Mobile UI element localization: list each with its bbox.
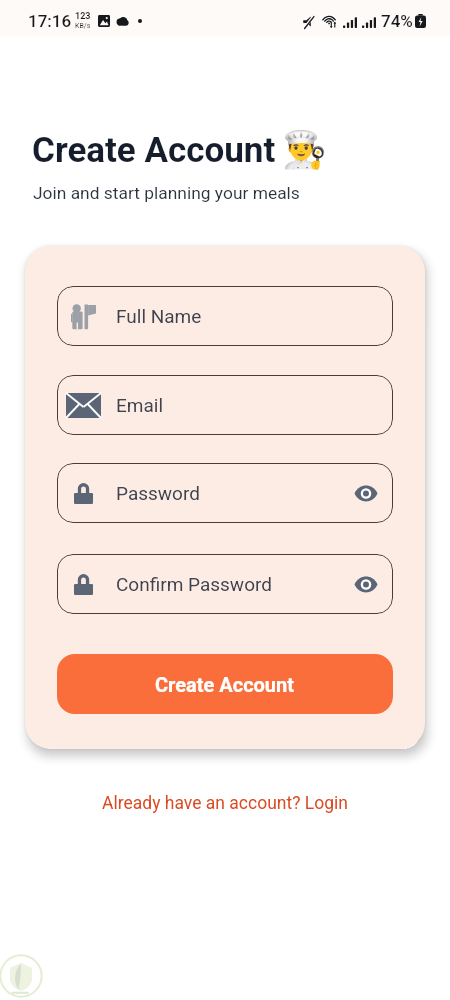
staticText: Create Account <box>155 673 295 696</box>
staticText: 74% <box>381 11 413 31</box>
button[interactable]: Show password <box>353 570 379 598</box>
staticText: Password <box>116 482 200 504</box>
staticText: Full Name <box>116 305 202 327</box>
button[interactable]: Password <box>57 463 393 523</box>
staticText: KB/s <box>75 22 91 30</box>
button[interactable]: Email <box>57 375 393 435</box>
button[interactable]: Create Account <box>57 654 393 714</box>
staticText: Confirm Password <box>116 573 272 595</box>
staticText: Already have an account? Login <box>102 793 348 814</box>
staticText: Email <box>116 394 164 416</box>
button[interactable]: Full Name <box>57 286 393 346</box>
staticText: 👨‍🍳 <box>282 129 327 171</box>
staticText: Join and start planning your meals <box>33 183 300 203</box>
button[interactable]: Show password <box>353 479 379 507</box>
staticText: 123 <box>75 11 91 22</box>
button[interactable]: Confirm Password <box>57 554 393 614</box>
staticText: Create Account <box>32 130 276 171</box>
button[interactable]: Already have an account? Login <box>96 789 354 818</box>
staticText: 17:16 <box>28 11 72 31</box>
